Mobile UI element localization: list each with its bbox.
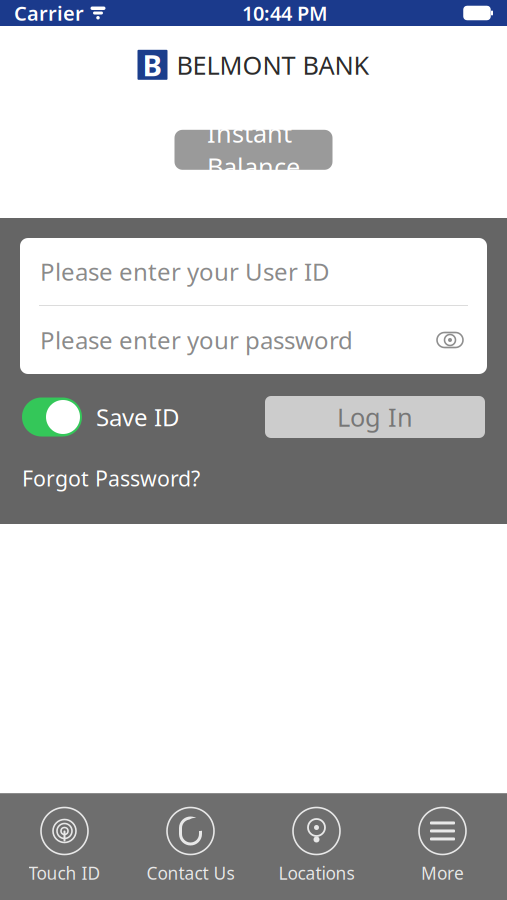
button[interactable]: Locations xyxy=(253,808,379,884)
staticText: Save ID xyxy=(96,401,180,433)
button[interactable]: Instant Balance xyxy=(174,130,332,170)
button[interactable]: Save ID xyxy=(22,397,180,436)
staticText: Log In xyxy=(337,400,413,434)
staticText: 10:44 PM xyxy=(242,0,328,26)
staticText: Please enter your password xyxy=(40,324,353,356)
staticText: Instant Balance xyxy=(207,116,300,183)
staticText: B xyxy=(142,45,162,84)
button[interactable]: Please enter your User ID xyxy=(20,238,487,305)
staticText: Contact Us xyxy=(146,861,234,884)
staticText: Touch ID xyxy=(28,861,100,884)
staticText: BELMONT BANK xyxy=(176,48,369,82)
staticText: Locations xyxy=(278,861,354,884)
button[interactable]: Contact Us xyxy=(127,808,253,884)
button[interactable]: Show password xyxy=(433,323,467,357)
button[interactable]: Forgot Password? xyxy=(22,464,200,492)
button[interactable]: Touch ID xyxy=(1,808,127,884)
staticText: Please enter your User ID xyxy=(40,256,330,287)
button[interactable]: More xyxy=(379,808,505,884)
staticText: Carrier xyxy=(14,0,84,26)
button[interactable]: Log In xyxy=(265,396,485,438)
button[interactable]: Please enter your password xyxy=(40,306,433,374)
staticText: More xyxy=(421,861,464,884)
staticText: Forgot Password? xyxy=(22,464,200,492)
